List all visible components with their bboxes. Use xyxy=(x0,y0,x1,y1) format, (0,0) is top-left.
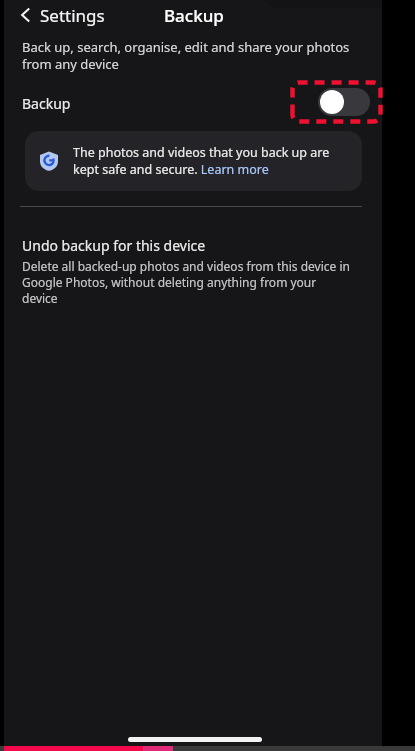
staticText: Backup xyxy=(164,4,224,27)
staticText: Back up, search, organise, edit and shar… xyxy=(22,38,362,73)
button[interactable]: Backup xyxy=(4,84,382,122)
staticText: Delete all backed-up photos and videos f… xyxy=(22,258,352,306)
button[interactable]: The photos and videos that you back up a… xyxy=(25,131,362,191)
staticText: Settings xyxy=(40,4,105,27)
staticText: Backup xyxy=(22,94,71,113)
button[interactable]: Undo backup for this device xyxy=(22,236,352,306)
staticText: Undo backup for this device xyxy=(22,236,206,255)
staticText: The photos and videos that you back up a… xyxy=(73,144,335,178)
button[interactable]: Settings xyxy=(14,0,109,30)
button[interactable]: Backup toggle xyxy=(318,88,370,116)
